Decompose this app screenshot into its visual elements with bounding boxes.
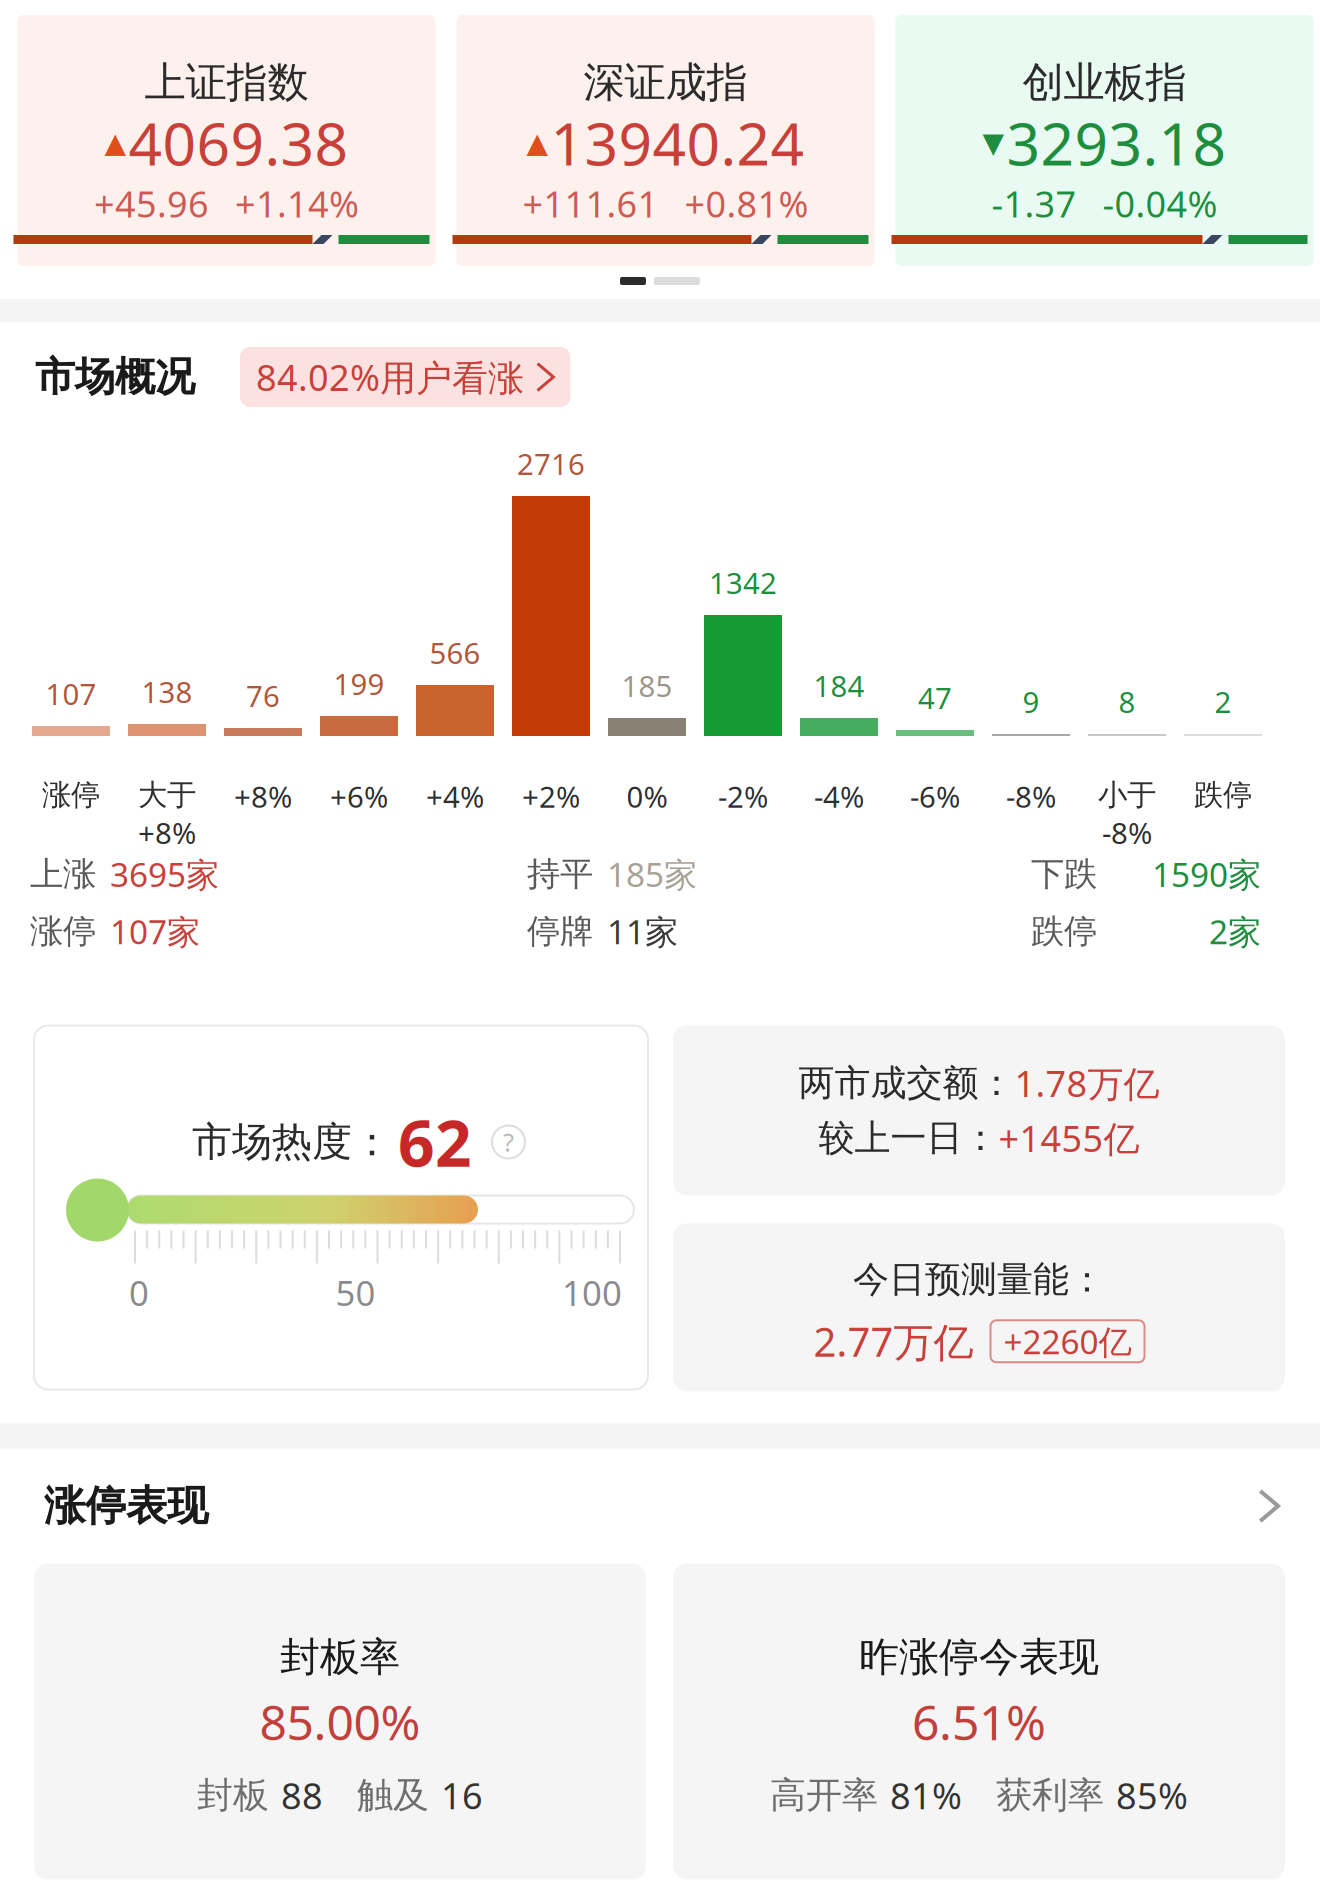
staticText: 封板率: [280, 1632, 400, 1682]
staticText: ▲: [526, 127, 548, 159]
staticText: 81%: [890, 1771, 962, 1819]
staticText: 185家: [607, 852, 697, 896]
staticText: 76: [246, 676, 280, 715]
staticText: 3293.18: [1006, 104, 1226, 182]
staticText: 市场概况: [35, 352, 195, 401]
staticText: 16: [441, 1771, 483, 1819]
staticText: 107: [45, 674, 96, 713]
button[interactable]: 创业板指: [895, 15, 1313, 266]
staticText: +45.96: [94, 180, 209, 227]
staticText: 停牌: [527, 911, 593, 952]
staticText: 6.51%: [912, 1690, 1046, 1753]
staticText: 跌停: [1031, 911, 1097, 952]
button[interactable]: 昨涨停今表现: [673, 1563, 1285, 1879]
staticText: 88: [281, 1771, 323, 1819]
staticText: -8%: [1102, 813, 1152, 852]
staticText: 566: [429, 633, 480, 672]
staticText: 小于: [1098, 777, 1156, 813]
staticText: 1.78万亿: [1014, 1059, 1159, 1107]
staticText: 62: [398, 1099, 472, 1184]
staticText: 获利率: [996, 1773, 1104, 1817]
staticText: 持平: [527, 854, 593, 894]
staticText: 今日预测量能：: [853, 1257, 1105, 1302]
staticText: -6%: [910, 777, 960, 816]
staticText: +6%: [330, 777, 388, 816]
staticText: 较上一日：: [818, 1116, 998, 1160]
staticText: 107家: [110, 909, 200, 953]
staticText: -8%: [1006, 777, 1056, 816]
staticText: 上证指数: [144, 57, 308, 108]
staticText: +1455亿: [998, 1114, 1139, 1162]
staticText: 3695家: [110, 852, 219, 896]
staticText: ▼: [982, 127, 1004, 159]
staticText: 138: [141, 672, 192, 711]
staticText: +111.61: [522, 180, 658, 227]
staticText: 185: [621, 666, 672, 705]
staticText: 1590家: [1152, 852, 1261, 896]
staticText: 47: [918, 678, 952, 717]
staticText: +8%: [138, 813, 196, 852]
staticText: 9: [1022, 682, 1039, 721]
staticText: 4069.38: [128, 104, 348, 182]
staticText: 84.02%用户看涨: [256, 353, 524, 401]
button[interactable]: 涨停表现: [0, 1448, 1320, 1563]
staticText: 下跌: [1031, 854, 1097, 894]
staticText: 50: [335, 1269, 375, 1315]
staticText: +2%: [522, 777, 580, 816]
staticText: 深证成指: [583, 57, 747, 108]
staticText: -4%: [814, 777, 864, 816]
staticText: 涨停: [30, 911, 96, 952]
staticText: 2716: [517, 444, 585, 483]
staticText: 上涨: [30, 854, 96, 894]
staticText: -1.37: [991, 180, 1076, 227]
staticText: +8%: [234, 777, 292, 816]
staticText: 涨停: [42, 777, 100, 813]
staticText: 2.77万亿: [813, 1315, 973, 1368]
staticText: 2家: [1209, 909, 1261, 953]
staticText: 85.00%: [259, 1690, 420, 1753]
staticText: 封板: [197, 1773, 269, 1817]
staticText: +4%: [426, 777, 484, 816]
button[interactable]: 深证成指: [456, 15, 874, 266]
staticText: 184: [813, 666, 864, 705]
staticText: 市场热度：: [192, 1117, 392, 1166]
staticText: 触及: [357, 1773, 429, 1817]
staticText: 昨涨停今表现: [859, 1632, 1099, 1682]
staticText: ?: [503, 1125, 514, 1159]
staticText: -0.04%: [1102, 180, 1217, 227]
staticText: 涨停表现: [44, 1481, 208, 1531]
button[interactable]: 84.02%用户看涨: [240, 347, 570, 407]
staticText: 0: [129, 1269, 149, 1315]
staticText: 大于: [138, 777, 196, 813]
staticText: +0.81%: [684, 180, 808, 227]
button[interactable]: 上证指数: [17, 15, 435, 266]
staticText: 100: [562, 1269, 622, 1315]
staticText: 1342: [709, 563, 777, 602]
staticText: ▲: [104, 127, 126, 159]
staticText: 11家: [607, 909, 678, 953]
staticText: 创业板指: [1022, 57, 1186, 108]
staticText: 199: [333, 664, 384, 703]
staticText: 85%: [1116, 1771, 1188, 1819]
staticText: +1.14%: [235, 180, 359, 227]
staticText: 高开率: [770, 1773, 878, 1817]
button[interactable]: 封板率: [34, 1563, 646, 1879]
staticText: 8: [1118, 682, 1135, 721]
staticText: +2260亿: [1003, 1319, 1131, 1363]
staticText: 2: [1214, 682, 1231, 721]
staticText: 0%: [626, 777, 667, 816]
staticText: 跌停: [1194, 777, 1252, 813]
staticText: 两市成交额：: [798, 1061, 1014, 1105]
staticText: -2%: [718, 777, 768, 816]
staticText: 13940.24: [550, 104, 804, 182]
